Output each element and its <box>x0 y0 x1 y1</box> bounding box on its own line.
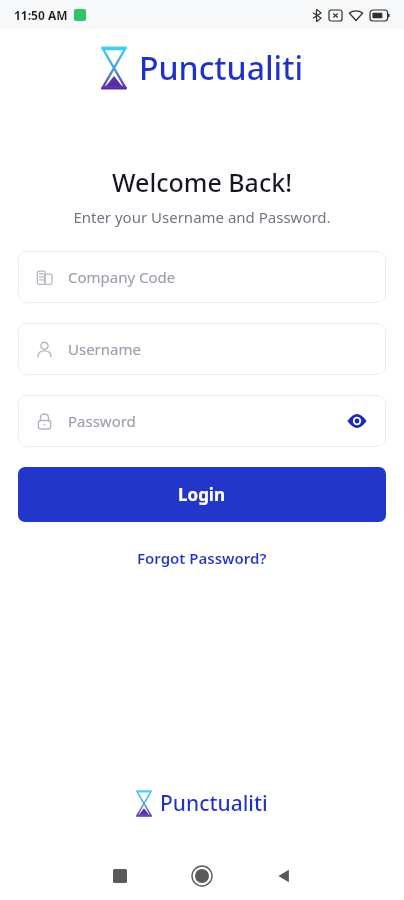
staticText: Company Code <box>68 267 176 287</box>
staticText: Enter your Username and Password. <box>0 207 404 227</box>
button[interactable]: Back <box>256 852 312 900</box>
button[interactable]: Company Code <box>18 251 386 303</box>
button[interactable]: Login <box>18 467 386 522</box>
staticText: Username <box>68 339 141 359</box>
button[interactable]: Recents <box>92 852 148 900</box>
button[interactable]: Forgot Password? <box>129 544 275 572</box>
staticText: Forgot Password? <box>137 548 267 568</box>
staticText: Welcome Back! <box>0 165 404 199</box>
staticText: Punctualiti <box>160 789 268 818</box>
staticText: Punctualiti <box>139 46 304 90</box>
button[interactable]: Home <box>174 852 230 900</box>
staticText: Password <box>68 411 136 431</box>
button[interactable]: Show password <box>344 408 370 434</box>
button[interactable]: Username <box>18 323 386 375</box>
button[interactable]: Password <box>18 395 386 447</box>
staticText: 11:50 AM <box>14 7 68 23</box>
staticText: Login <box>178 483 226 506</box>
